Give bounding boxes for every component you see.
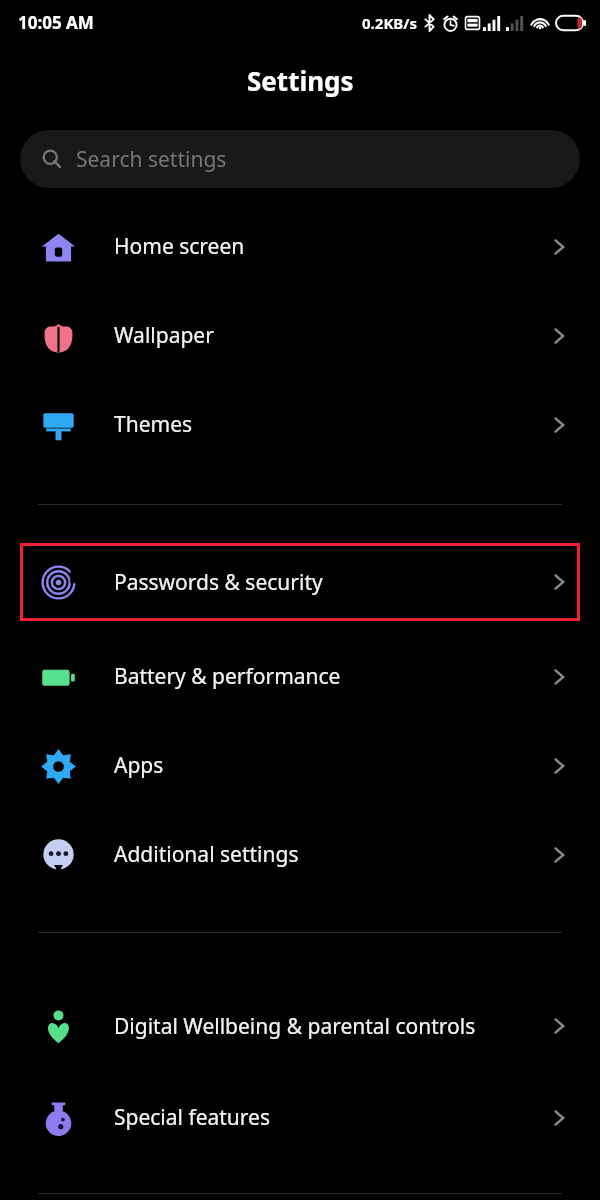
- button[interactable]: Themes: [0, 380, 600, 469]
- other: Open Apps: [548, 755, 570, 777]
- other: Open Digital Wellbeing & parental contro…: [548, 1015, 570, 1037]
- staticText: Search settings: [76, 145, 227, 174]
- button[interactable]: Digital Wellbeing & parental controls: [0, 979, 600, 1073]
- staticText: Wallpaper: [114, 321, 538, 350]
- button[interactable]: Additional settings: [0, 810, 600, 899]
- staticText: Apps: [114, 751, 538, 780]
- button[interactable]: Home screen: [0, 202, 600, 291]
- button[interactable]: Search settings: [20, 130, 580, 188]
- staticText: Battery & performance: [114, 662, 538, 691]
- other: Open Passwords & security: [548, 571, 570, 593]
- button[interactable]: Special features: [0, 1073, 600, 1162]
- staticText: 0.2KB/s: [362, 13, 418, 33]
- button[interactable]: Battery & performance: [0, 632, 600, 721]
- other: Open Themes: [548, 414, 570, 436]
- staticText: Digital Wellbeing & parental controls: [114, 1012, 538, 1041]
- staticText: Home screen: [114, 232, 538, 261]
- other: Open Wallpaper: [548, 325, 570, 347]
- staticText: Passwords & security: [114, 568, 538, 597]
- staticText: Additional settings: [114, 840, 538, 869]
- staticText: Special features: [114, 1103, 538, 1132]
- staticText: Settings: [247, 63, 354, 98]
- staticText: 10:05 AM: [18, 11, 94, 34]
- other: Open Home screen: [548, 236, 570, 258]
- other: Open Additional settings: [548, 844, 570, 866]
- button[interactable]: Passwords & security: [0, 543, 600, 621]
- button[interactable]: Wallpaper: [0, 291, 600, 380]
- button[interactable]: Apps: [0, 721, 600, 810]
- other: Open Special features: [548, 1107, 570, 1129]
- staticText: Themes: [114, 410, 538, 439]
- other: Open Battery & performance: [548, 666, 570, 688]
